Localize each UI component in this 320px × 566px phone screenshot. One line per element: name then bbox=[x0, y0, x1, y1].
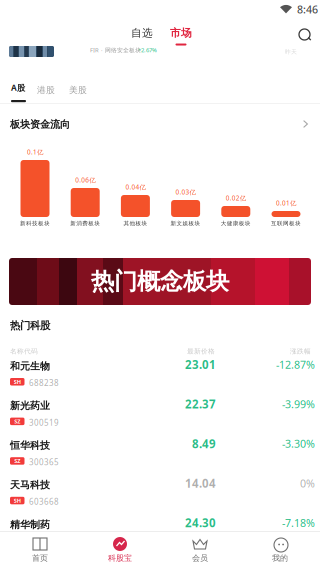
button[interactable]: 和元生物 bbox=[0, 359, 320, 399]
button[interactable]: 港股 bbox=[37, 80, 61, 100]
staticText: 23.01 bbox=[185, 357, 216, 372]
staticText: 新光药业 bbox=[10, 400, 50, 412]
button[interactable]: 天马科技 bbox=[0, 478, 320, 517]
staticText: 会员 bbox=[192, 553, 208, 563]
staticText: -12.87% bbox=[276, 357, 315, 372]
staticText: SZ bbox=[14, 457, 20, 465]
button[interactable]: 我的 bbox=[240, 531, 320, 566]
staticText: 新消费板块 bbox=[70, 220, 100, 227]
button[interactable]: 科股宝 bbox=[80, 531, 160, 566]
staticText: 新科技板块 bbox=[20, 220, 50, 227]
staticText: 我的 bbox=[272, 553, 288, 563]
staticText: A股 bbox=[11, 82, 25, 93]
staticText: 大健康板块 bbox=[221, 220, 251, 227]
staticText: 美股 bbox=[69, 84, 87, 96]
staticText: 0.1亿 bbox=[27, 148, 43, 156]
staticText: 300519 bbox=[29, 417, 59, 428]
staticText: 自选 bbox=[131, 26, 153, 40]
button[interactable]: A股 bbox=[11, 75, 37, 105]
staticText: 天马科技 bbox=[10, 479, 50, 491]
staticText: 0.01亿 bbox=[276, 199, 296, 207]
staticText: 互联网板块 bbox=[271, 220, 301, 227]
staticText: 300365 bbox=[29, 457, 59, 468]
staticText: 603678 bbox=[29, 536, 59, 547]
staticText: 板块资金流向 bbox=[10, 118, 70, 131]
staticText: 精华制药 bbox=[10, 518, 50, 531]
button[interactable]: 新光药业 bbox=[0, 399, 320, 438]
staticText: 市场 bbox=[170, 26, 192, 40]
button[interactable]: 美股 bbox=[69, 80, 93, 100]
staticText: 0.02亿 bbox=[226, 194, 246, 202]
button[interactable]: 热门概念板块 bbox=[9, 258, 311, 305]
staticText: SZ bbox=[14, 417, 20, 425]
staticText: +2.67% bbox=[138, 46, 157, 54]
staticText: 603668 bbox=[29, 496, 59, 507]
staticText: 热门概念板块 bbox=[91, 267, 229, 296]
button[interactable]: 首页 bbox=[0, 531, 80, 566]
staticText: 688238 bbox=[29, 377, 59, 388]
staticText: 恒华科技 bbox=[10, 439, 50, 452]
staticText: 24.30 bbox=[185, 515, 216, 531]
staticText: FIR · 网络安全板块 bbox=[90, 46, 141, 54]
staticText: 14.04 bbox=[185, 475, 216, 491]
staticText: 0.06亿 bbox=[75, 176, 95, 184]
staticText: 8.49 bbox=[192, 436, 216, 451]
button[interactable]: 会员 bbox=[160, 531, 240, 566]
staticText: 22.37 bbox=[185, 396, 216, 412]
button[interactable]: Search bbox=[291, 22, 317, 46]
staticText: -3.30% bbox=[282, 436, 315, 451]
staticText: 0.03亿 bbox=[176, 188, 196, 196]
staticText: 0% bbox=[300, 476, 315, 490]
staticText: 最新价格 bbox=[187, 347, 215, 355]
staticText: 港股 bbox=[37, 84, 55, 96]
button[interactable]: 精华制药 bbox=[0, 517, 320, 557]
staticText: 8:46 bbox=[297, 2, 318, 16]
staticText: 首页 bbox=[32, 553, 48, 563]
staticText: 新文娱板块 bbox=[171, 220, 201, 227]
button[interactable]: 市场 bbox=[161, 21, 201, 49]
staticText: 热门科股 bbox=[10, 319, 50, 332]
staticText: SH bbox=[14, 378, 21, 385]
staticText: 涨跌幅 bbox=[290, 347, 311, 355]
button[interactable]: 恒华科技 bbox=[0, 438, 320, 478]
staticText: 科股宝 bbox=[108, 553, 132, 563]
button[interactable]: 板块资金流向 bbox=[0, 110, 320, 138]
staticText: 其他板块 bbox=[123, 220, 147, 227]
staticText: -3.99% bbox=[282, 397, 315, 411]
staticText: 0.04亿 bbox=[125, 183, 145, 191]
staticText: 和元生物 bbox=[10, 360, 50, 372]
button[interactable]: 自选 bbox=[122, 21, 162, 45]
staticText: 名称代码 bbox=[10, 347, 38, 355]
staticText: 昨天 bbox=[285, 48, 297, 55]
staticText: SH bbox=[14, 497, 21, 504]
staticText: -7.18% bbox=[282, 516, 315, 530]
